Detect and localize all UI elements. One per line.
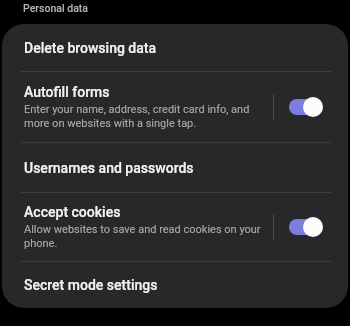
staticText: Personal data	[23, 2, 89, 14]
staticText: Accept cookies	[24, 204, 121, 220]
button[interactable]: Accept cookies	[2, 193, 348, 261]
staticText: Enter your name, address, credit card in…	[24, 103, 250, 130]
button[interactable]: Delete browsing data	[2, 24, 348, 71]
button[interactable]: Autofill forms	[2, 72, 348, 142]
staticText: Delete browsing data	[24, 40, 157, 56]
staticText: Autofill forms	[24, 84, 110, 100]
staticText: Secret mode settings	[24, 277, 158, 293]
button[interactable]: Usernames and passwords	[2, 143, 348, 192]
staticText: Allow websites to save and read cookies …	[24, 223, 261, 250]
button[interactable]: Secret mode settings	[2, 262, 348, 308]
staticText: Usernames and passwords	[24, 160, 194, 176]
